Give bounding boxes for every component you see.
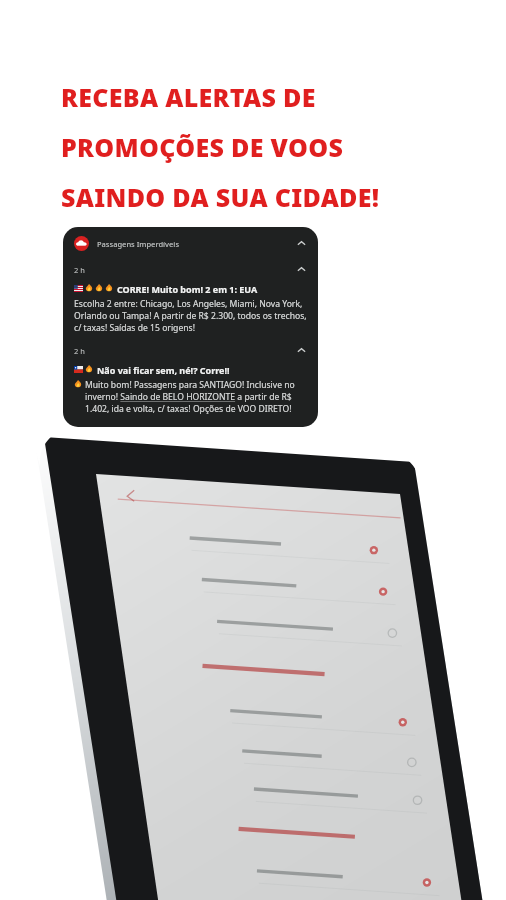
staticText: Muito bom! Passagens para SANTIAGO! Incl…	[85, 379, 308, 415]
staticText: RECEBA ALERTAS DE	[61, 80, 316, 114]
button[interactable]: Collapse	[295, 344, 308, 357]
staticText: SAINDO DA SUA CIDADE!	[61, 180, 380, 214]
button[interactable]: Collapse	[295, 263, 308, 276]
staticText: Escolha 2 entre: Chicago, Los Angeles, M…	[74, 298, 308, 334]
button[interactable]: Collapse	[295, 237, 308, 250]
button[interactable]: 2 h	[63, 340, 318, 427]
staticText: Passagens Imperdíveis	[97, 239, 180, 249]
button[interactable]: 2 h	[63, 259, 318, 340]
staticText: 2 h	[74, 265, 85, 275]
staticText: PROMOÇÕES DE VOOS	[61, 130, 344, 164]
staticText: 2 h	[74, 346, 85, 356]
staticText: CORRE! Muito bom! 2 em 1: EUA	[117, 283, 258, 295]
other: App icon	[74, 236, 89, 251]
button[interactable]: App icon	[63, 227, 318, 259]
staticText: Não vai ficar sem, né!? Corre!!	[97, 364, 230, 376]
